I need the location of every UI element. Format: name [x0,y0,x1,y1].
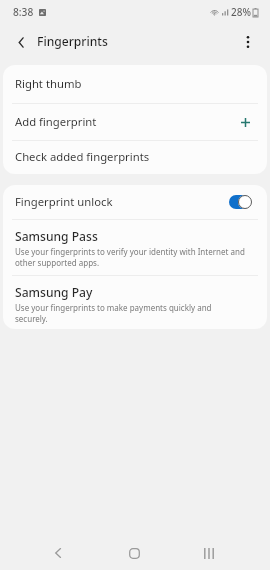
staticText: 28% [231,5,251,19]
staticText: Samsung Pay [15,284,93,300]
staticText: Fingerprints [37,33,108,49]
button[interactable]: Home [114,535,154,570]
button[interactable]: Navigate up [7,28,35,56]
button[interactable]: Add fingerprint [3,104,267,140]
staticText: Right thumb [15,76,82,91]
button[interactable]: Samsung Pay [3,276,267,329]
button[interactable]: Recent apps [189,535,229,570]
staticText: Check added fingerprints [15,149,150,164]
button[interactable]: Back [38,535,78,570]
staticText: 8:38 [13,5,34,19]
staticText: Use your fingerprints to verify your ide… [15,246,255,268]
button[interactable]: More options [234,28,262,56]
button[interactable]: Fingerprint unlock [3,185,267,219]
staticText: Fingerprint unlock [15,194,113,209]
staticText: Samsung Pass [15,228,98,244]
button[interactable]: Check added fingerprints [3,141,267,174]
staticText: Use your fingerprints to make payments q… [15,302,212,324]
staticText: Add fingerprint [15,114,97,129]
button[interactable]: Right thumb [3,65,267,103]
button[interactable]: Samsung Pass [3,220,267,275]
